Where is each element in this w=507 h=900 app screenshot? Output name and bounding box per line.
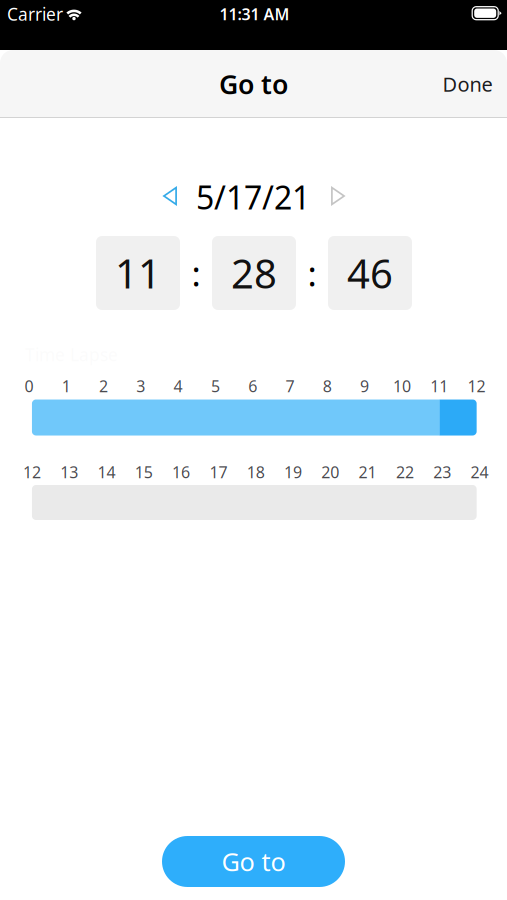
staticText: Carrier bbox=[7, 2, 63, 25]
staticText: 17 bbox=[209, 461, 227, 483]
staticText: 46 bbox=[347, 246, 393, 299]
staticText: : bbox=[191, 250, 200, 296]
button[interactable]: Go to bbox=[162, 836, 345, 887]
staticText: Go to bbox=[219, 66, 288, 102]
button[interactable]: 46 bbox=[328, 236, 412, 310]
button[interactable]: 28 bbox=[212, 236, 296, 310]
staticText: 5 bbox=[211, 375, 220, 397]
staticText: 2 bbox=[99, 375, 108, 397]
staticText: 3 bbox=[136, 375, 145, 397]
staticText: 10 bbox=[393, 375, 411, 397]
button[interactable]: Timeline, midnight to noon bbox=[32, 399, 477, 435]
staticText: 13 bbox=[60, 461, 78, 483]
staticText: 6 bbox=[248, 375, 257, 397]
staticText: 20 bbox=[321, 461, 339, 483]
button[interactable]: Done bbox=[430, 62, 504, 106]
staticText: 11 bbox=[430, 375, 448, 397]
staticText: 11:31 AM bbox=[219, 3, 289, 25]
staticText: 21 bbox=[359, 461, 377, 483]
staticText: 9 bbox=[360, 375, 369, 397]
staticText: 4 bbox=[174, 375, 183, 397]
staticText: 5/17/21 bbox=[196, 176, 310, 218]
staticText: 23 bbox=[433, 461, 451, 483]
staticText: 16 bbox=[172, 461, 190, 483]
button[interactable]: Next day bbox=[318, 176, 358, 216]
staticText: 18 bbox=[247, 461, 265, 483]
button[interactable]: Previous day bbox=[150, 176, 190, 216]
staticText: 8 bbox=[323, 375, 332, 397]
staticText: 15 bbox=[135, 461, 153, 483]
staticText: 22 bbox=[396, 461, 414, 483]
staticText: 11 bbox=[115, 246, 161, 299]
staticText: Done bbox=[442, 71, 492, 97]
staticText: 14 bbox=[97, 461, 115, 483]
staticText: Go to bbox=[221, 845, 285, 878]
button[interactable]: 11 bbox=[96, 236, 180, 310]
staticText: 12 bbox=[23, 461, 41, 483]
staticText: 7 bbox=[285, 375, 294, 397]
staticText: 24 bbox=[470, 461, 488, 483]
staticText: 28 bbox=[231, 246, 277, 299]
staticText: 0 bbox=[24, 375, 33, 397]
staticText: 12 bbox=[467, 375, 485, 397]
staticText: 1 bbox=[62, 375, 71, 397]
staticText: : bbox=[307, 250, 316, 296]
staticText: 19 bbox=[284, 461, 302, 483]
